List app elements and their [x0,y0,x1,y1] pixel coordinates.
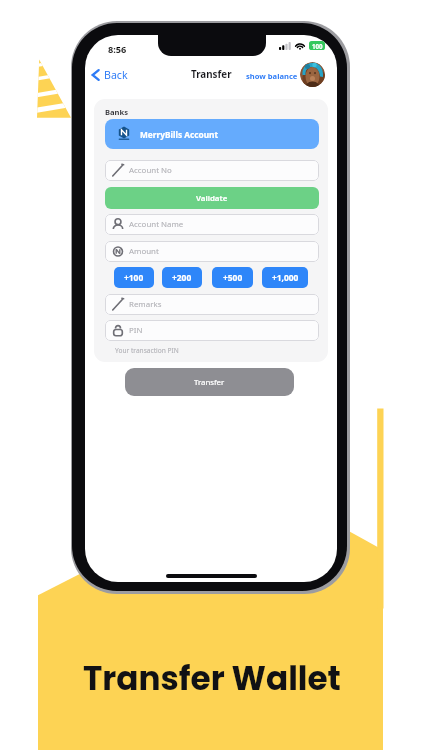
staticText: +1,000 [272,272,299,283]
staticText: Transfer [194,377,225,388]
button[interactable]: +100 [114,267,154,288]
staticText: +500 [223,272,243,283]
button[interactable]: PIN [105,320,319,341]
button[interactable]: +200 [162,267,202,288]
button[interactable]: Profile [300,62,325,87]
button[interactable]: Account Name [105,214,319,235]
staticText: +200 [172,272,192,283]
button[interactable]: +1,000 [262,267,308,288]
button[interactable]: show balance [246,71,298,81]
staticText: 100 [312,42,323,50]
staticText: PIN [129,325,143,336]
button[interactable]: Account No [105,160,319,181]
button[interactable]: Validate [105,187,319,209]
button[interactable]: MerryBills Account [105,119,319,149]
staticText: MerryBills Account [140,129,219,140]
staticText: +100 [124,272,144,283]
button[interactable]: +500 [212,267,253,288]
staticText: Transfer [191,68,232,81]
staticText: Back [104,68,128,82]
staticText: Amount [129,246,159,257]
staticText: Banks [105,107,129,117]
staticText: Remarks [129,299,162,310]
staticText: Your transaction PIN [115,346,179,355]
staticText: Account Name [129,219,184,230]
staticText: Transfer Wallet [83,656,341,702]
staticText: Account No [129,165,172,176]
button[interactable]: Back [91,66,128,83]
staticText: Validate [196,193,228,204]
button[interactable]: Transfer [125,368,294,396]
button[interactable]: Remarks [105,294,319,315]
staticText: 8:56 [108,43,127,56]
button[interactable]: Amount [105,241,319,262]
